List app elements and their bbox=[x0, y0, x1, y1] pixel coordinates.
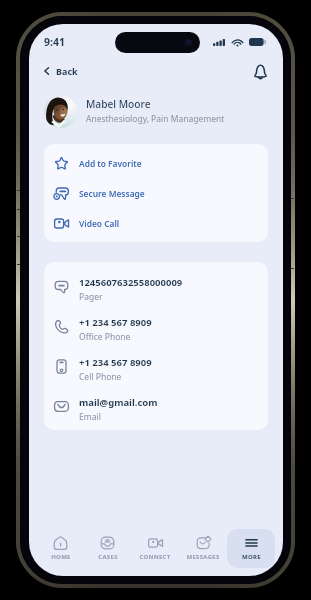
staticText: MESSAGES bbox=[186, 553, 220, 561]
staticText: Mabel Moore bbox=[86, 97, 151, 111]
staticText: Cell Phone bbox=[79, 371, 122, 383]
button[interactable]: +1 234 567 8909 bbox=[44, 306, 268, 346]
button[interactable]: CONNECT bbox=[131, 529, 179, 568]
staticText: MORE bbox=[242, 553, 261, 561]
staticText: Email bbox=[79, 411, 101, 423]
staticText: Back bbox=[56, 65, 78, 77]
staticText: Anesthesiology, Pain Management bbox=[86, 113, 225, 125]
staticText: Pager bbox=[79, 291, 103, 303]
staticText: Video Call bbox=[79, 218, 120, 229]
button[interactable]: Secure Message bbox=[44, 178, 268, 208]
button[interactable]: 1245607632558000009 bbox=[44, 266, 268, 306]
button[interactable]: Notifications bbox=[249, 60, 271, 82]
staticText: CONNECT bbox=[139, 553, 171, 561]
staticText: CASES bbox=[98, 553, 118, 561]
button[interactable]: +1 234 567 8909 bbox=[44, 346, 268, 386]
button[interactable]: Mabel Moore bbox=[44, 94, 269, 128]
staticText: +1 234 567 8909 bbox=[79, 356, 152, 369]
button[interactable]: HOME bbox=[37, 529, 84, 568]
staticText: +1 234 567 8909 bbox=[79, 316, 152, 329]
staticText: Add to Favorite bbox=[79, 158, 142, 169]
button[interactable]: Add to Favorite bbox=[44, 148, 268, 178]
button[interactable]: Back bbox=[40, 60, 82, 82]
staticText: mail@gmail.com bbox=[79, 396, 158, 409]
staticText: Secure Message bbox=[79, 188, 145, 199]
button[interactable]: mail@gmail.com bbox=[44, 386, 268, 426]
staticText: 1245607632558000009 bbox=[79, 276, 183, 289]
button[interactable]: CASES bbox=[84, 529, 131, 568]
button[interactable]: MESSAGES bbox=[179, 529, 227, 568]
staticText: HOME bbox=[51, 553, 71, 561]
button[interactable]: Video Call bbox=[44, 208, 268, 238]
staticText: 9:41 bbox=[44, 35, 65, 49]
button[interactable]: MORE bbox=[227, 529, 275, 568]
staticText: Office Phone bbox=[79, 331, 131, 343]
